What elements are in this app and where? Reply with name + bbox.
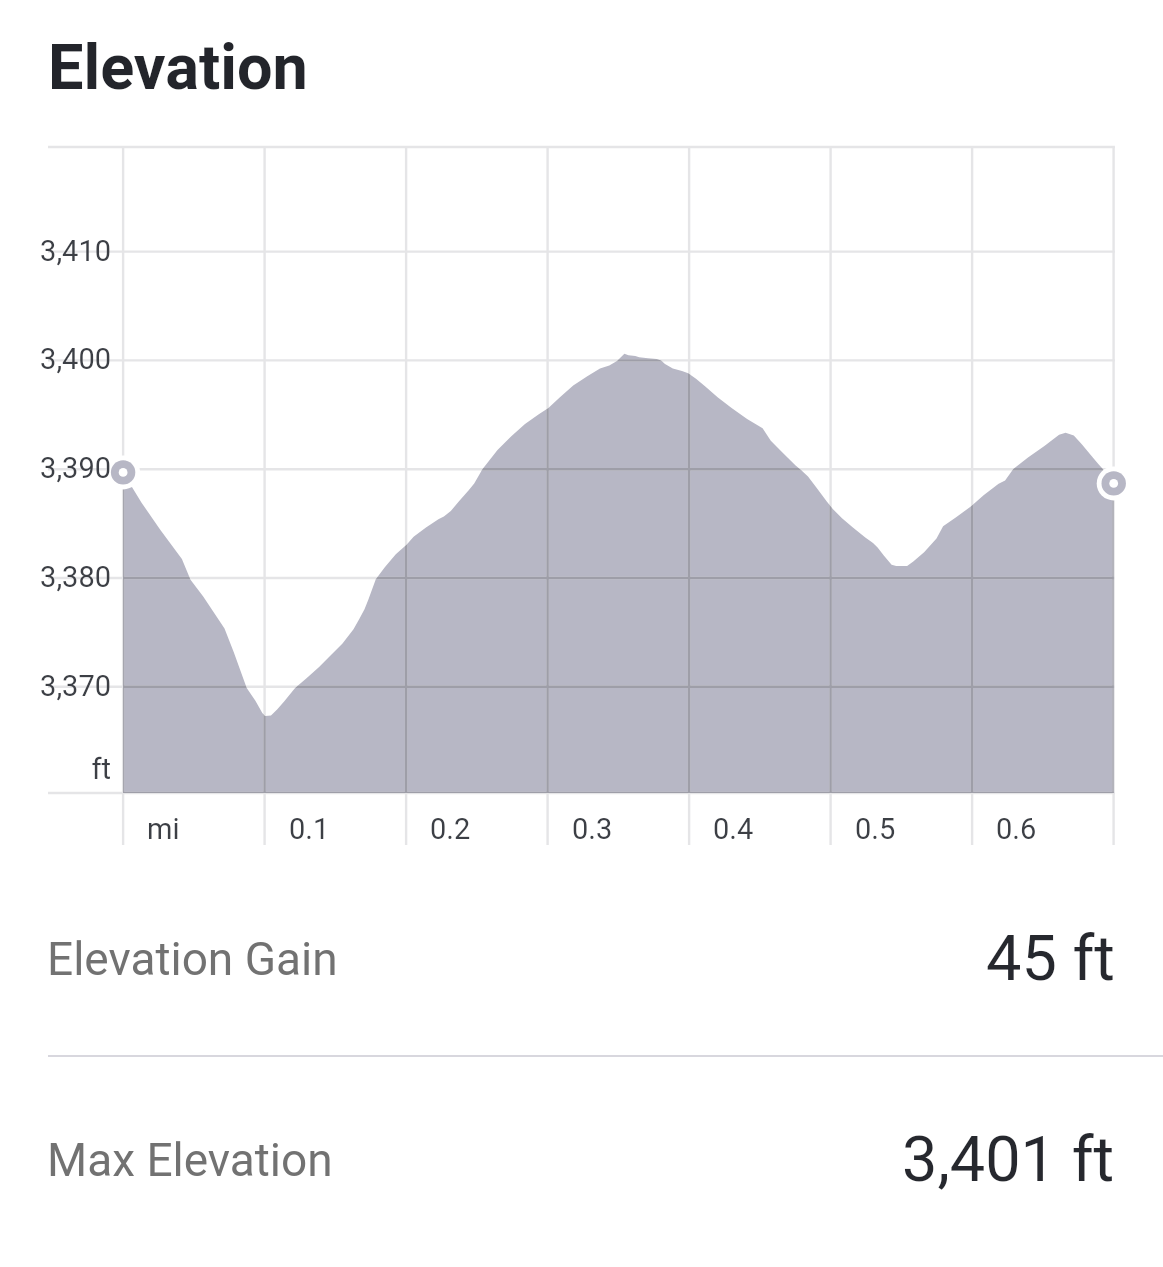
staticText: 0.3	[572, 812, 613, 846]
staticText: ft	[0, 752, 111, 786]
staticText: mi	[147, 812, 180, 846]
staticText: 0.5	[855, 812, 896, 846]
staticText: Elevation	[48, 31, 308, 105]
staticText: Max Elevation	[47, 1133, 333, 1187]
staticText: 3,380	[0, 560, 111, 594]
button[interactable]: Elevation Gain	[0, 871, 1163, 1046]
staticText: 3,370	[0, 669, 111, 703]
staticText: 0.4	[713, 812, 754, 846]
staticText: 3,410	[0, 234, 111, 268]
staticText: 0.1	[289, 812, 330, 846]
staticText: 45 ft	[986, 922, 1115, 996]
staticText: 0.2	[430, 812, 471, 846]
staticText: 0.6	[996, 812, 1037, 846]
staticText: 3,400	[0, 342, 111, 376]
staticText: Elevation Gain	[47, 932, 338, 986]
button[interactable]: Max Elevation	[0, 1072, 1163, 1247]
other: Elevation profile chart	[0, 147, 1163, 890]
staticText: 3,401 ft	[902, 1123, 1115, 1197]
staticText: 3,390	[0, 451, 111, 485]
